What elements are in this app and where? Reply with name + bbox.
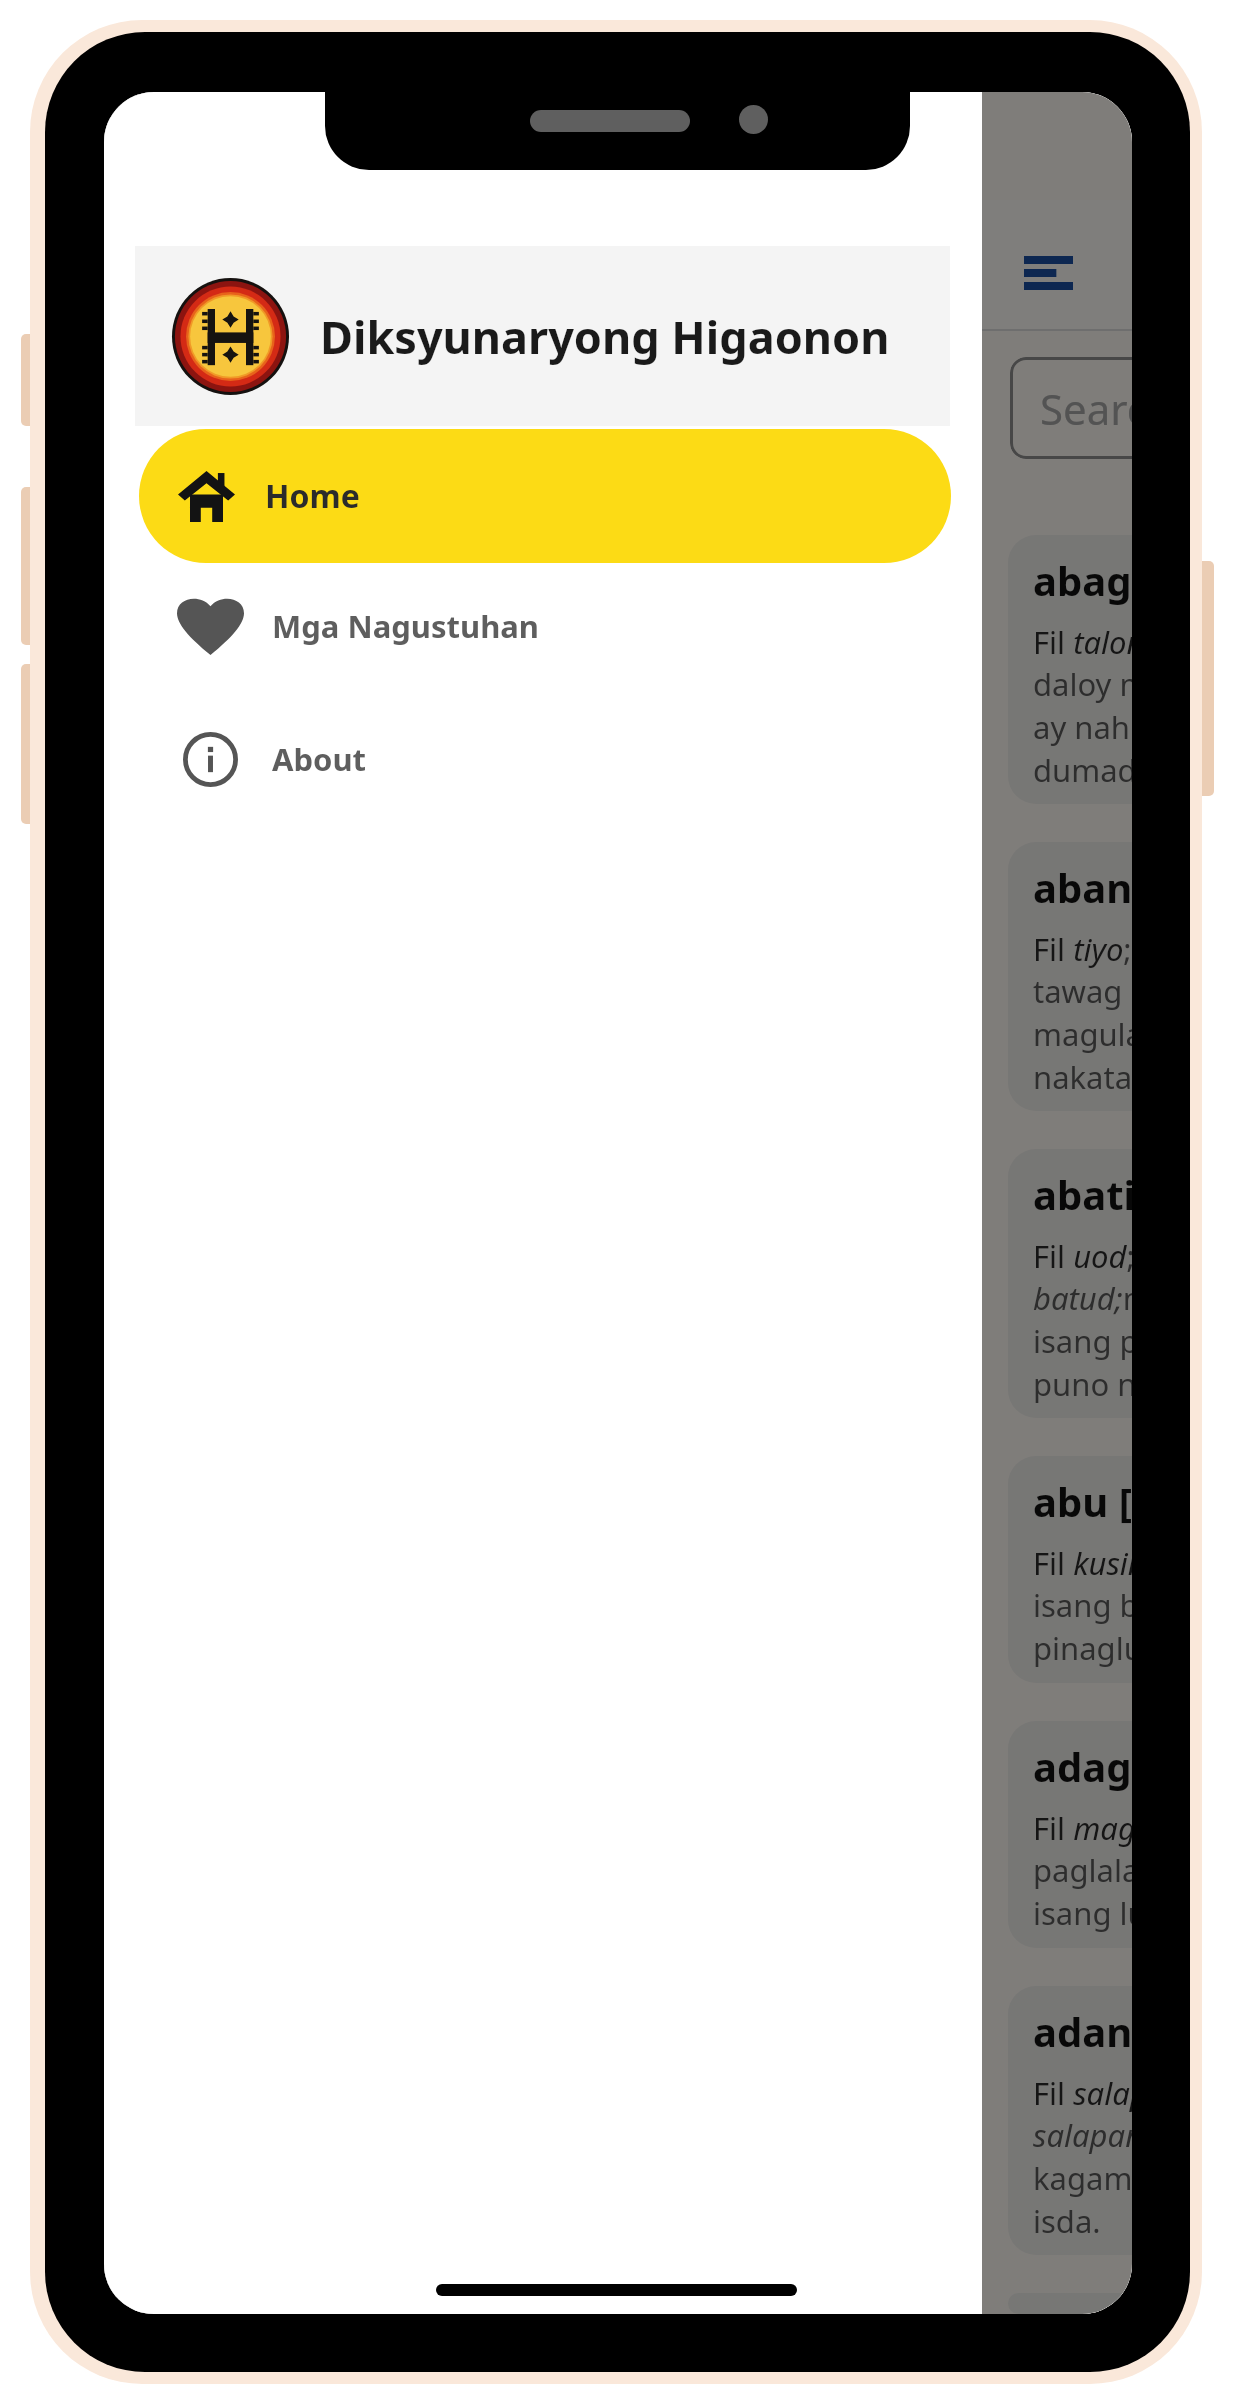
staticText: adangan [a.da.ngan] bbox=[1033, 2004, 1132, 2058]
staticText: adag [a.dag] bbox=[1033, 1739, 1132, 1793]
button[interactable]: Search a word... bbox=[1010, 357, 1132, 459]
button[interactable]: Diksyunaryong Higaonon bbox=[135, 246, 950, 426]
staticText: Search a word... bbox=[1040, 380, 1132, 437]
staticText: Mga Nagustuhan bbox=[272, 605, 540, 647]
button[interactable]: adangan [a.da.ngan] bbox=[1008, 1986, 1132, 2255]
button[interactable]: adag [a.dag] bbox=[1008, 1721, 1132, 1948]
button[interactable]: abu [a.bu] bbox=[1008, 1456, 1132, 1683]
button[interactable]: Mga Nagustuhan bbox=[139, 564, 951, 688]
staticText: Fil kusina; lutuan ng isang bahay o luga… bbox=[1033, 1542, 1132, 1669]
staticText: abanan [a.ba.nan] bbox=[1033, 860, 1132, 914]
staticText: About bbox=[272, 738, 367, 780]
staticText: abati [a.ba.ti] bbox=[1033, 1167, 1132, 1221]
staticText: Fil magluto; pagsasaing paglalagay sa ap… bbox=[1033, 1807, 1132, 1934]
staticText: Fil talon; isang tubig na daloy mula sa … bbox=[1033, 621, 1132, 791]
button[interactable]: abanan [a.ba.nan] bbox=[1008, 842, 1132, 1111]
button[interactable]: abagbag [a.bag.bag] bbox=[1008, 535, 1132, 804]
button[interactable]: About bbox=[139, 697, 951, 821]
staticText: abu [a.bu] bbox=[1033, 1474, 1132, 1528]
staticText: Home bbox=[265, 474, 360, 518]
staticText: Fil uod; isang uri ng batud;matatagpuan … bbox=[1033, 1235, 1132, 1405]
staticText: abagbag [a.bag.bag] bbox=[1033, 553, 1132, 607]
button[interactable]: Open navigation menu bbox=[1024, 256, 1073, 290]
staticText: Fil salapang; isang uri salapang;kagamit… bbox=[1033, 2072, 1132, 2242]
staticText: Fil tiyo; isang katawagan tawag sa kapat… bbox=[1033, 928, 1132, 1098]
staticText: agbot [ag.bot] bbox=[1033, 2311, 1132, 2314]
staticText: Diksyunaryong Higaonon bbox=[320, 306, 890, 367]
button[interactable]: agbot [ag.bot] bbox=[1008, 2293, 1132, 2314]
button[interactable]: abati [a.ba.ti] bbox=[1008, 1149, 1132, 1418]
button[interactable]: Home bbox=[139, 429, 951, 563]
